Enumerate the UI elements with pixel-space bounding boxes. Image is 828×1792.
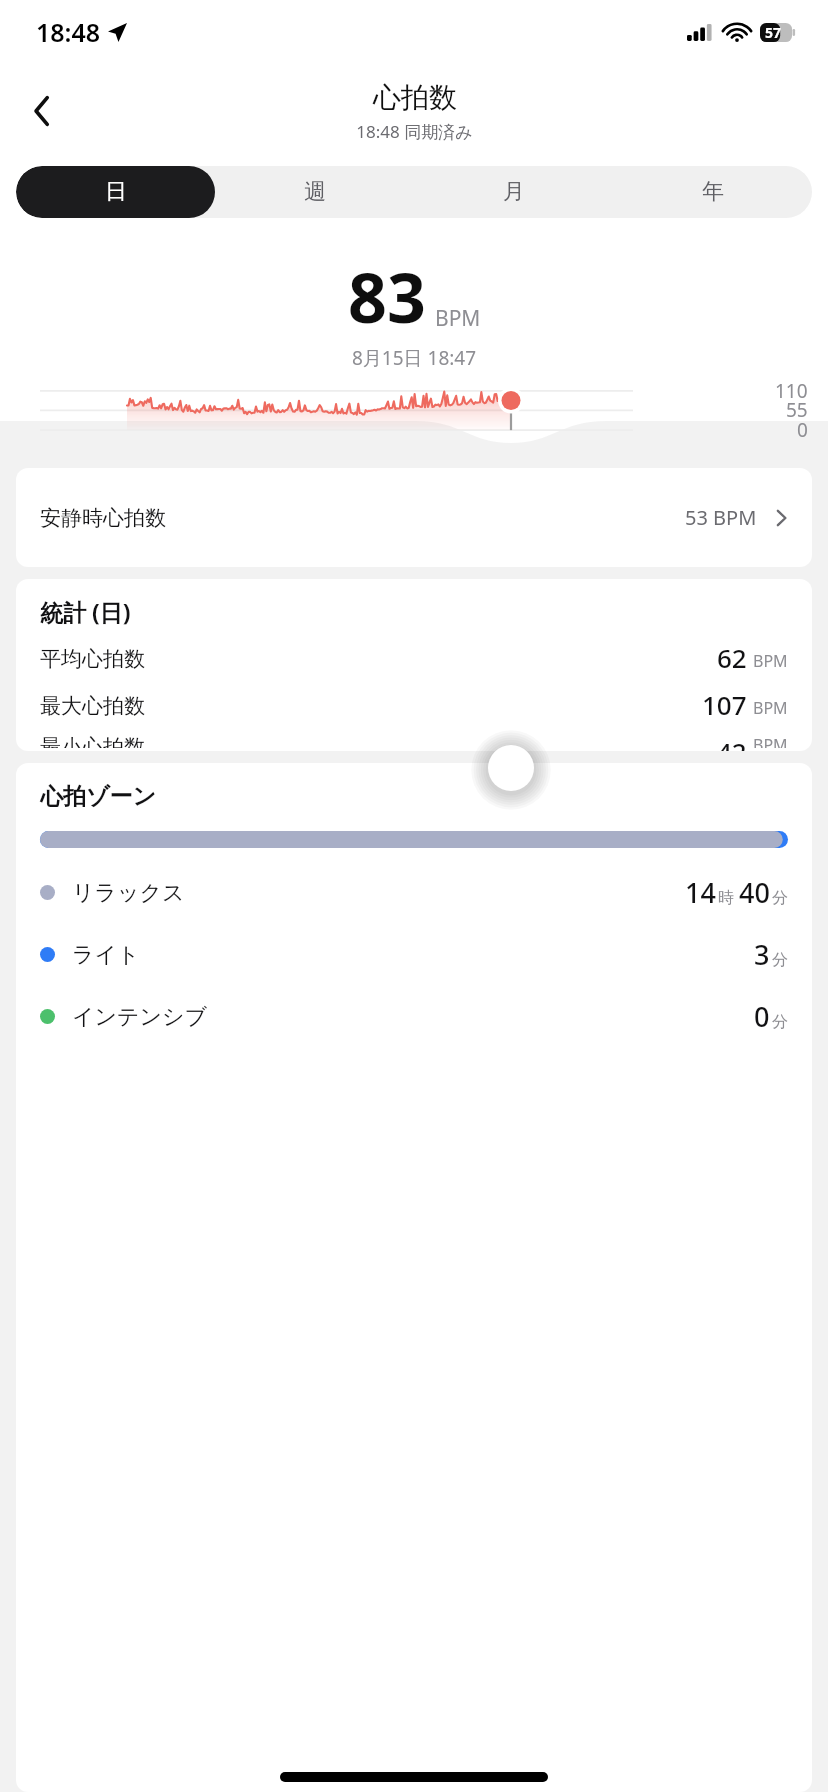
staticText: 分 xyxy=(772,1012,788,1032)
staticText: 安静時心拍数 xyxy=(40,505,166,531)
button[interactable]: 最大心拍数 xyxy=(40,687,788,722)
staticText: 心拍ゾーン xyxy=(40,782,157,811)
staticText: 53 BPM xyxy=(685,504,757,531)
staticText: 0 xyxy=(754,998,770,1035)
staticText: 統計 (日) xyxy=(40,596,131,627)
button[interactable]: 平均心拍数 xyxy=(40,640,788,675)
staticText: 42 xyxy=(717,734,747,751)
staticText: 107 xyxy=(702,687,747,722)
staticText: 分 xyxy=(772,950,788,970)
staticText: BPM xyxy=(435,304,481,333)
staticText: BPM xyxy=(753,734,788,748)
staticText: リラックス xyxy=(72,879,185,907)
staticText: 日 xyxy=(105,178,127,206)
button[interactable]: インテンシブ xyxy=(40,998,788,1035)
button[interactable]: 月 xyxy=(414,166,613,218)
staticText: 40 xyxy=(739,874,770,911)
staticText: BPM xyxy=(753,697,788,719)
button[interactable]: 最小心拍数 xyxy=(40,734,788,751)
staticText: 14 xyxy=(685,874,716,911)
staticText: 55 xyxy=(786,397,808,423)
staticText: インテンシブ xyxy=(72,1003,208,1031)
staticText: 3 xyxy=(754,936,770,973)
staticText: 月 xyxy=(503,178,525,206)
staticText: 心拍数 xyxy=(373,80,457,115)
staticText: 平均心拍数 xyxy=(40,646,145,672)
staticText: 110 xyxy=(775,378,808,404)
staticText: 0 xyxy=(797,417,808,443)
button[interactable]: 日 xyxy=(16,166,215,218)
staticText: BPM xyxy=(753,650,788,672)
staticText: 最小心拍数 xyxy=(40,734,145,748)
button[interactable]: 安静時心拍数 xyxy=(16,468,812,567)
staticText: 83 xyxy=(348,250,426,343)
staticText: ライト xyxy=(72,941,140,969)
button[interactable]: リラックス xyxy=(40,874,788,911)
button[interactable]: 年 xyxy=(613,166,812,218)
staticText: 57 xyxy=(765,23,782,42)
staticText: 年 xyxy=(702,178,724,206)
button[interactable]: Back xyxy=(16,85,68,137)
staticText: 時 xyxy=(718,888,734,908)
staticText: 最大心拍数 xyxy=(40,693,145,719)
button[interactable]: ライト xyxy=(40,936,788,973)
button[interactable]: 週 xyxy=(215,166,414,218)
staticText: 18:48 xyxy=(36,15,101,49)
staticText: 62 xyxy=(717,640,747,675)
staticText: 分 xyxy=(772,888,788,908)
other: Chart scrubber xyxy=(0,0,828,1792)
staticText: 8月15日 18:47 xyxy=(352,345,477,371)
staticText: 週 xyxy=(304,178,326,206)
staticText: 18:48 同期済み xyxy=(356,120,473,142)
